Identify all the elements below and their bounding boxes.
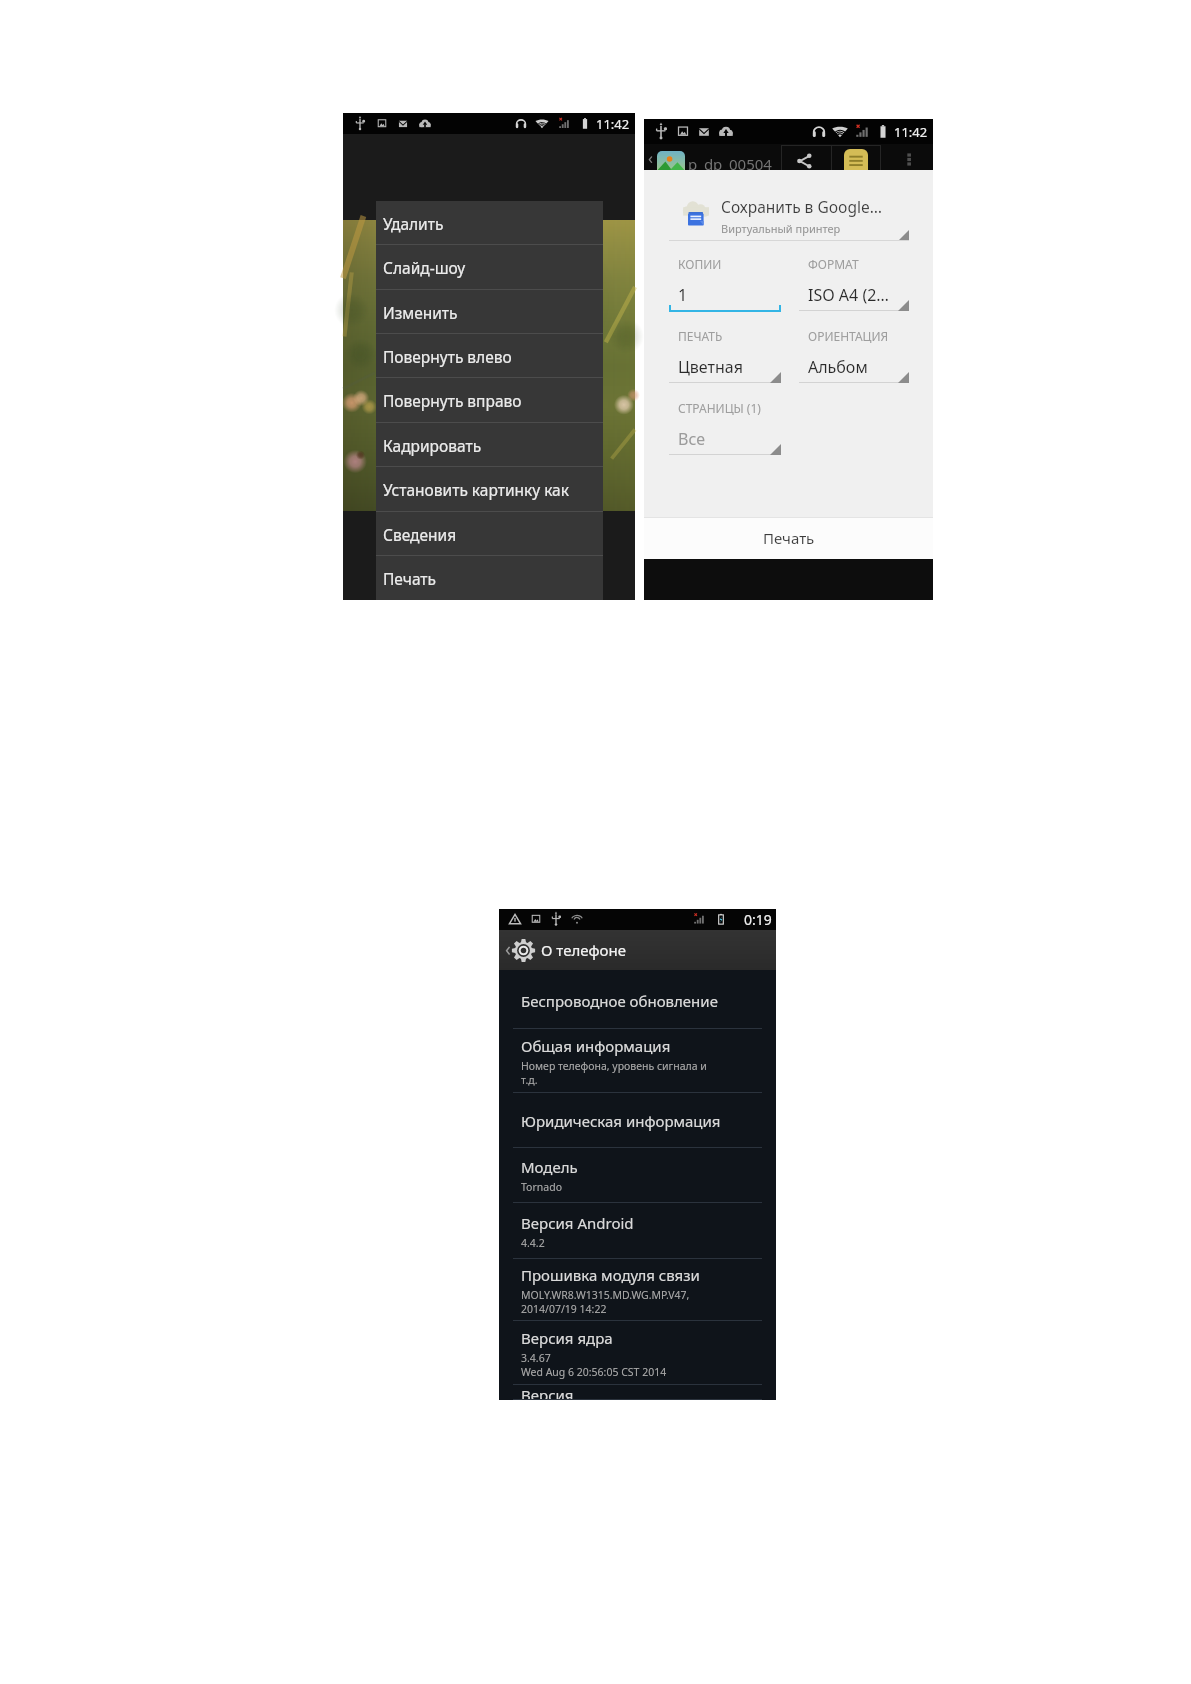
staticText: MOLY.WR8.W1315.MD.WG.MP.V47, 2014/07/19 … xyxy=(521,1288,690,1316)
staticText: Виртуальный принтер xyxy=(721,221,841,236)
button[interactable]: Версия Android xyxy=(499,1203,776,1259)
button[interactable]: СТРАНИЦЫ (1) xyxy=(669,400,781,422)
button[interactable]: КОПИИ xyxy=(669,256,781,278)
staticText: Юридическая информация xyxy=(521,1111,721,1131)
button[interactable]: ‹ xyxy=(499,930,776,970)
button[interactable]: Беспроводное обновление xyxy=(499,973,776,1029)
staticText: Версия Android xyxy=(521,1213,634,1233)
staticText: Общая информация xyxy=(521,1036,671,1056)
button[interactable]: Версия xyxy=(499,1385,776,1400)
staticText: ОРИЕНТАЦИЯ xyxy=(808,328,889,344)
other: Settings xyxy=(511,938,536,963)
button[interactable]: ПЕЧАТЬ xyxy=(669,328,781,350)
staticText: Модель xyxy=(521,1157,578,1177)
staticText: Номер телефона, уровень сигнала и т.д. xyxy=(521,1059,707,1087)
staticText: Кадрировать xyxy=(383,435,482,456)
staticText: О телефоне xyxy=(541,940,626,960)
staticText: Удалить xyxy=(383,213,444,234)
button[interactable]: Удалить xyxy=(376,201,603,245)
button[interactable]: Общая информация xyxy=(499,1029,776,1093)
button[interactable]: Изменить xyxy=(376,290,603,334)
button[interactable]: Повернуть вправо xyxy=(376,378,603,423)
button[interactable]: Печать xyxy=(376,556,603,600)
staticText: 1 xyxy=(678,284,688,306)
staticText: ‹ xyxy=(505,936,511,962)
button[interactable]: Прошивка модуля связи xyxy=(499,1259,776,1321)
button[interactable]: More options xyxy=(898,148,920,170)
staticText: Печать xyxy=(763,528,815,548)
button[interactable]: Модель xyxy=(499,1148,776,1203)
staticText: Установить картинку как xyxy=(383,479,569,500)
button[interactable]: Слайд-шоу xyxy=(376,245,603,290)
staticText: 0:19 xyxy=(744,910,772,929)
button[interactable]: ФОРМАТ xyxy=(799,256,909,278)
button[interactable]: Сведения xyxy=(376,512,603,556)
staticText: Слайд-шоу xyxy=(383,257,466,278)
button[interactable]: Navigate up xyxy=(644,146,656,170)
staticText: Печать xyxy=(383,568,436,589)
staticText: Цветная xyxy=(678,356,743,378)
button[interactable]: Photo thumbnail xyxy=(657,151,685,171)
button[interactable]: Details xyxy=(844,149,868,170)
staticText: КОПИИ xyxy=(678,256,722,272)
staticText: Беспроводное обновление xyxy=(521,991,718,1011)
staticText: СТРАНИЦЫ (1) xyxy=(678,400,761,416)
button[interactable]: ОРИЕНТАЦИЯ xyxy=(799,328,909,350)
button[interactable]: Share xyxy=(793,149,816,172)
staticText: Tornado xyxy=(521,1180,562,1194)
button[interactable]: Версия ядра xyxy=(499,1321,776,1385)
staticText: ‹ xyxy=(648,147,653,169)
staticText: Версия ядра xyxy=(521,1328,613,1348)
staticText: 4.4.2 xyxy=(521,1236,545,1250)
staticText: Версия xyxy=(521,1385,574,1400)
staticText: Прошивка модуля связи xyxy=(521,1265,700,1285)
staticText: Все xyxy=(678,428,705,450)
staticText: Изменить xyxy=(383,302,458,323)
button[interactable]: Повернуть влево xyxy=(376,334,603,378)
staticText: Альбом xyxy=(808,356,868,378)
staticText: Повернуть вправо xyxy=(383,390,522,411)
staticText: Повернуть влево xyxy=(383,346,512,367)
staticText: ПЕЧАТЬ xyxy=(678,328,723,344)
button[interactable]: Установить картинку как xyxy=(376,467,603,512)
staticText: 11:42 xyxy=(596,115,630,133)
staticText: p_dp_00504 xyxy=(688,154,772,174)
staticText: Сведения xyxy=(383,524,457,545)
button[interactable]: Печать xyxy=(644,517,933,559)
staticText: ФОРМАТ xyxy=(808,256,859,272)
staticText: ISO A4 (2… xyxy=(808,284,890,306)
staticText: 3.4.67 Wed Aug 6 20:56:05 CST 2014 xyxy=(521,1351,667,1379)
button[interactable]: Юридическая информация xyxy=(499,1093,776,1148)
staticText: 11:42 xyxy=(894,123,928,141)
staticText: Сохранить в Google… xyxy=(721,196,882,217)
button[interactable]: Кадрировать xyxy=(376,423,603,467)
